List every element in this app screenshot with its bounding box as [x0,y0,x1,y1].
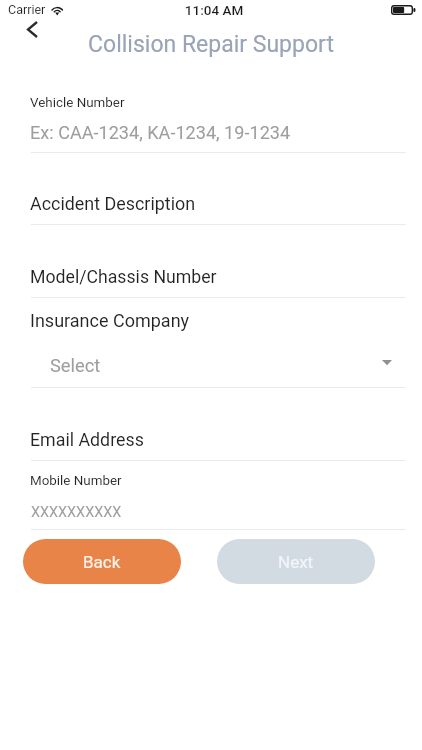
staticText: XXXXXXXXXX [31,504,122,521]
button[interactable]: Back [14,11,50,47]
staticText: Back [83,552,121,572]
button[interactable]: Next [217,539,375,584]
staticText: Next [278,552,314,572]
staticText: Email Address [30,429,144,450]
staticText: Accident Description [30,193,196,214]
button[interactable] [31,186,406,225]
staticText: Model/Chassis Number [30,267,217,288]
button[interactable]: Back [23,539,181,584]
staticText: Carrier [8,2,46,17]
staticText: Insurance Company [30,310,190,331]
staticText: Vehicle Number [30,95,125,111]
staticText: Ex: CAA-1234, KA-1234, 19-1234 [30,122,291,143]
button[interactable] [31,345,406,388]
button[interactable] [31,464,406,530]
button[interactable] [31,260,406,298]
staticText: Collision Repair Support [0,31,422,58]
button[interactable] [31,422,406,461]
staticText: Select [50,355,101,376]
staticText: Mobile Number [30,473,122,489]
staticText: 11:04 AM [3,2,422,18]
button[interactable] [31,86,406,152]
